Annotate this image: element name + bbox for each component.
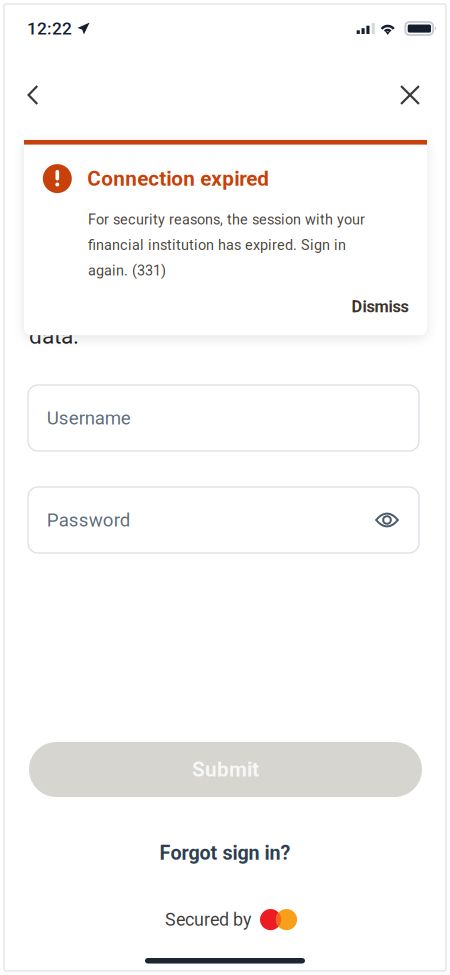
button[interactable]: Forgot sign in? [145, 836, 305, 870]
button[interactable]: Submit [29, 742, 422, 797]
staticText: financial institution has expired. Sign … [88, 237, 346, 253]
staticText: For security reasons, the session with y… [88, 211, 365, 228]
button[interactable]: Close [387, 69, 433, 121]
staticText: Dismiss [351, 297, 408, 316]
staticText: 12:22 [27, 18, 72, 39]
button[interactable]: Back [10, 69, 56, 121]
staticText: again. (331) [88, 262, 166, 279]
staticText: Connection expired [87, 166, 269, 191]
staticText: Password [47, 509, 131, 531]
staticText: Submit [192, 757, 259, 782]
staticText: Forgot sign in? [159, 841, 290, 864]
staticText: Username [47, 407, 131, 429]
button[interactable]: Dismiss [337, 287, 408, 324]
staticText: data. [29, 323, 79, 349]
staticText: Secured by [165, 909, 251, 930]
button[interactable]: Show password [368, 500, 406, 540]
